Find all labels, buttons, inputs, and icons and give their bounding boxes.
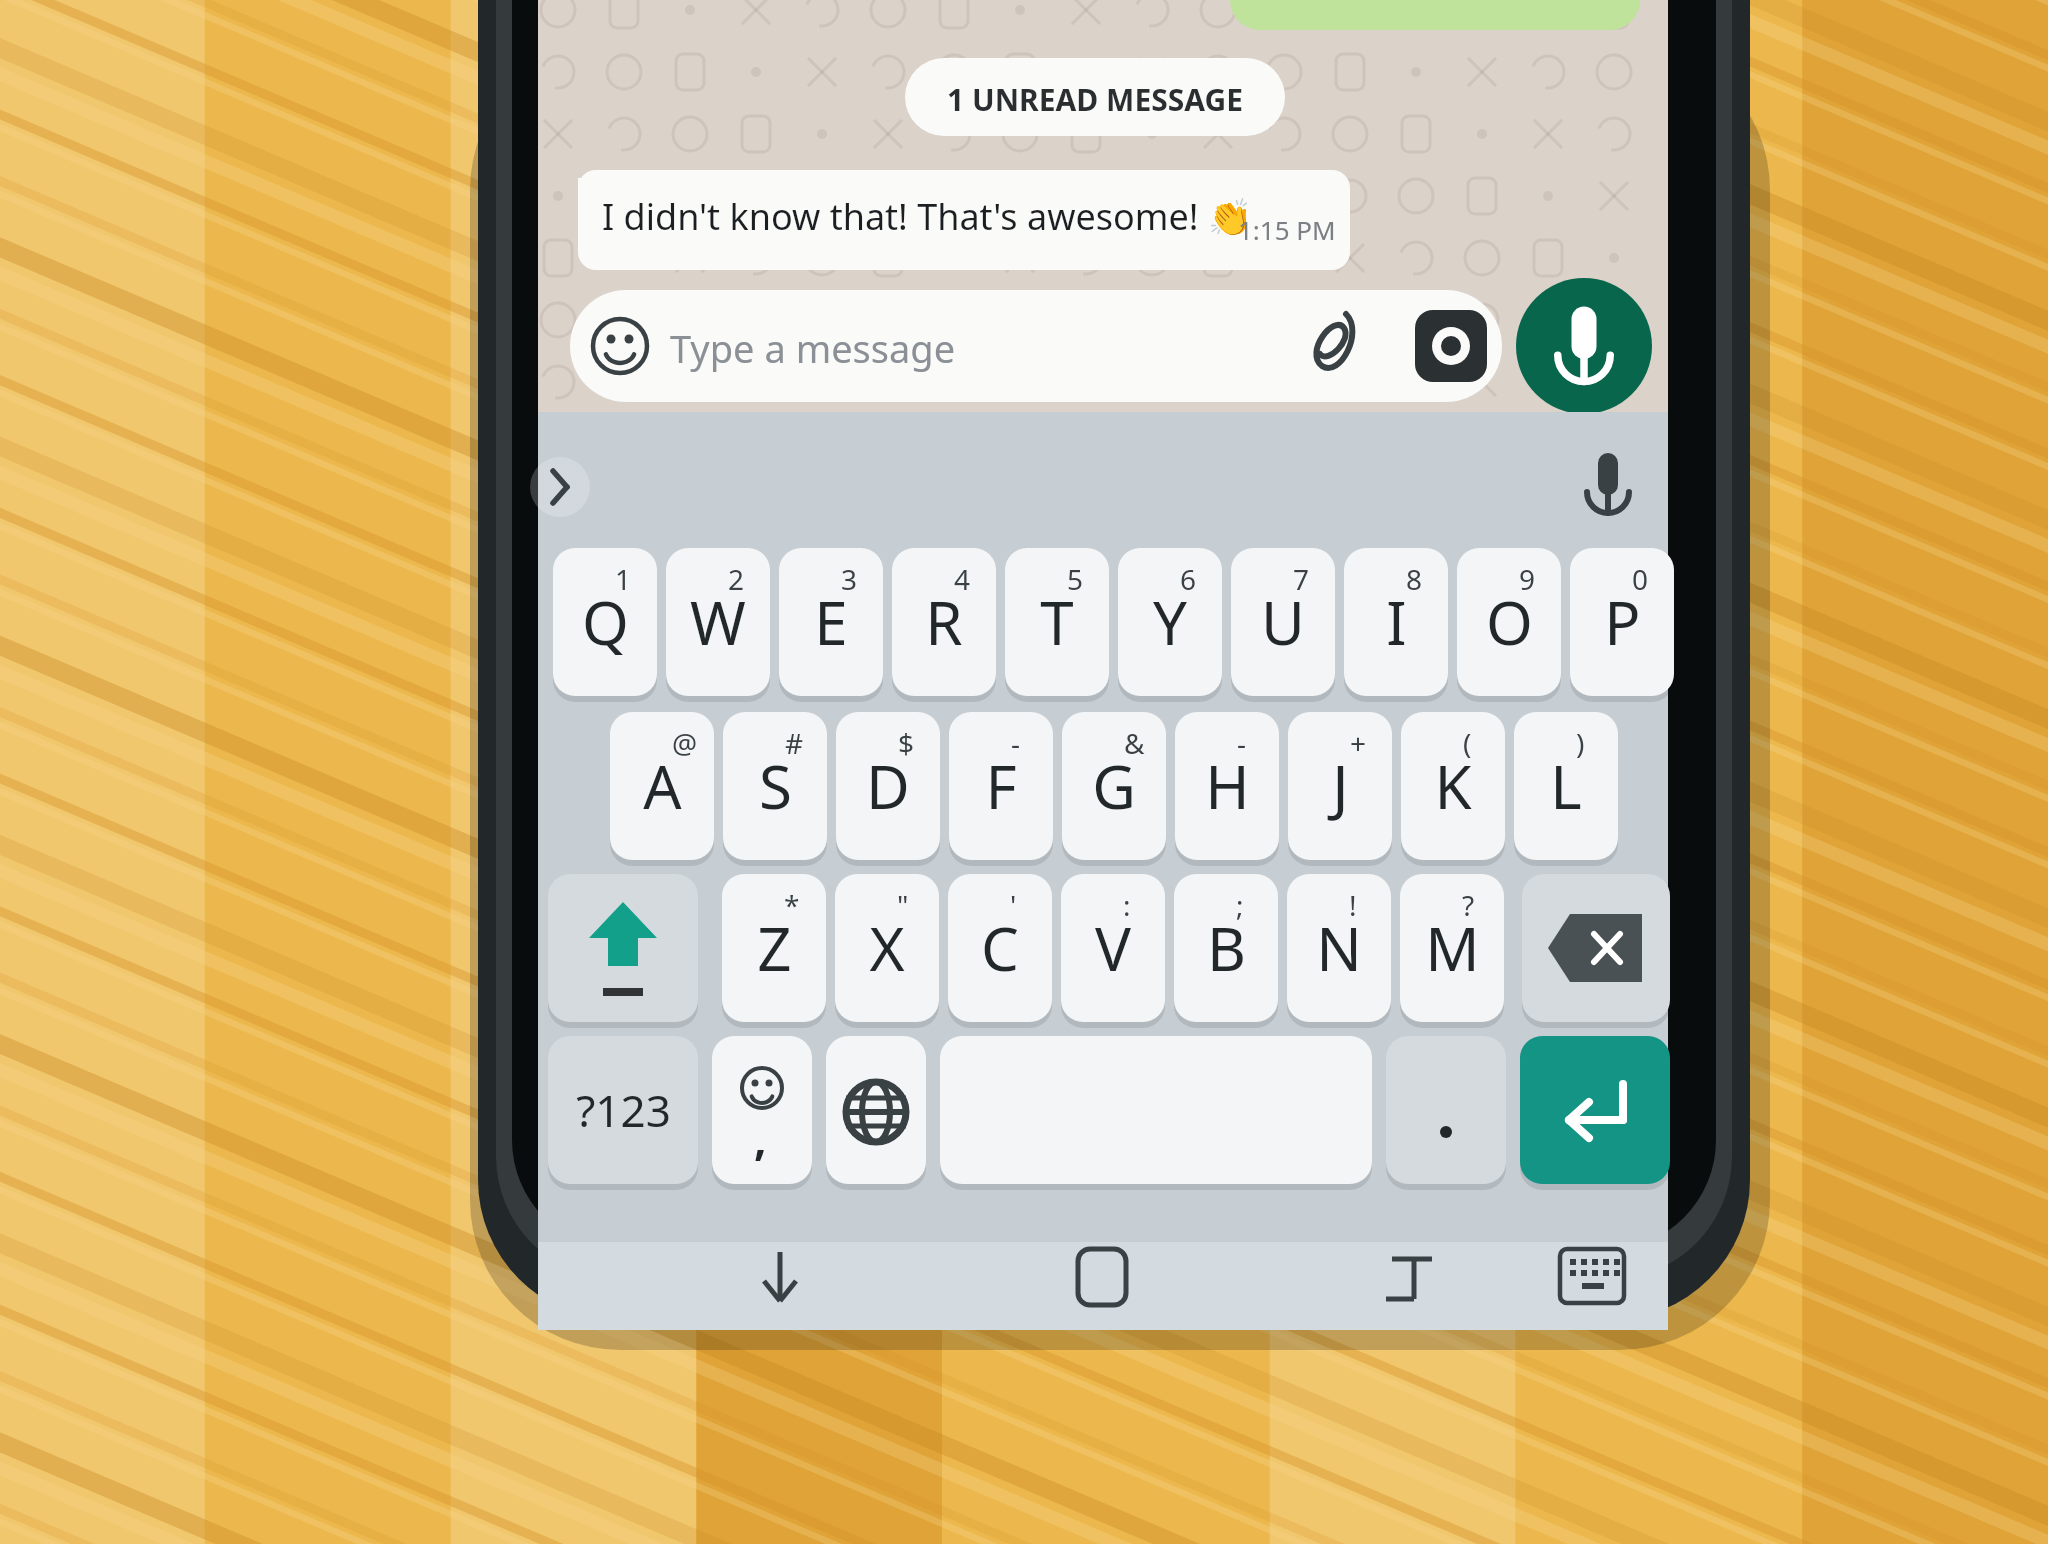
button[interactable]: Home [1062, 1242, 1142, 1328]
staticText: 3 [841, 560, 858, 598]
button[interactable]: T [1005, 566, 1109, 678]
button[interactable]: Space [940, 1036, 1372, 1184]
staticText: : [1123, 886, 1131, 924]
button[interactable]: K [1401, 730, 1505, 842]
button[interactable]: S [723, 730, 827, 842]
button[interactable]: Voice input [1578, 453, 1638, 513]
staticText: L [1550, 745, 1582, 827]
staticText: M [1425, 907, 1480, 989]
staticText: Q [582, 581, 629, 663]
staticText: A [643, 745, 682, 827]
button[interactable]: Emoji [712, 1036, 812, 1184]
button[interactable]: Change language [826, 1036, 926, 1184]
button[interactable]: N [1287, 892, 1391, 1004]
staticText: B [1207, 907, 1246, 989]
staticText: " [897, 886, 909, 924]
button[interactable]: Back [1380, 1242, 1460, 1328]
staticText: I [1386, 581, 1407, 663]
staticText: 2 [728, 560, 745, 598]
staticText: & [1124, 724, 1145, 762]
button[interactable]: Type a message [570, 290, 1502, 402]
button[interactable]: H [1175, 730, 1279, 842]
staticText: ; [1236, 886, 1244, 924]
button[interactable]: F [949, 730, 1053, 842]
button[interactable]: Period [1386, 1036, 1506, 1184]
staticText: O [1486, 581, 1533, 663]
staticText: R [925, 581, 963, 663]
staticText: 1 UNREAD MESSAGE [947, 79, 1243, 120]
staticText: - [1237, 724, 1247, 762]
staticText: F [985, 745, 1017, 827]
staticText: 5 [1067, 560, 1084, 598]
staticText: T [1040, 581, 1074, 663]
staticText: + [1350, 724, 1367, 762]
staticText: $ [898, 724, 915, 762]
button[interactable]: R [892, 566, 996, 678]
staticText: Y [1153, 581, 1187, 663]
staticText: H [1205, 745, 1250, 827]
button[interactable]: O [1457, 566, 1561, 678]
button[interactable]: Enter [1520, 1036, 1670, 1184]
button[interactable]: Y [1118, 566, 1222, 678]
staticText: P [1604, 581, 1641, 663]
button[interactable]: Record voice message [1516, 278, 1652, 414]
staticText: ? [1462, 886, 1475, 924]
staticText: - [1011, 724, 1021, 762]
button[interactable]: W [666, 566, 770, 678]
button[interactable]: X [835, 892, 939, 1004]
staticText: , [754, 1108, 767, 1168]
button[interactable]: Z [722, 892, 826, 1004]
staticText: # [785, 724, 804, 762]
staticText: ! [1349, 886, 1357, 924]
button[interactable]: Q [553, 566, 657, 678]
staticText: W [690, 581, 746, 663]
button[interactable]: U [1231, 566, 1335, 678]
staticText: J [1332, 745, 1349, 827]
staticText: ?123 [576, 1080, 671, 1140]
staticText: Type a message [670, 322, 956, 374]
staticText: 8 [1406, 560, 1423, 598]
button[interactable]: P [1570, 566, 1674, 678]
button[interactable]: Hide keyboard [740, 1242, 820, 1328]
staticText: N [1316, 907, 1362, 989]
staticText: 1 [615, 560, 632, 598]
staticText: 7 [1293, 560, 1310, 598]
button[interactable]: Backspace [1522, 874, 1670, 1022]
staticText: 4 [954, 560, 971, 598]
staticText: ' [1010, 886, 1017, 924]
button[interactable]: 1 UNREAD MESSAGE [905, 78, 1285, 120]
button[interactable]: E [779, 566, 883, 678]
staticText: K [1434, 745, 1472, 827]
staticText: I didn't know that! That's awesome! 👏 [602, 192, 1253, 241]
staticText: S [759, 745, 792, 827]
staticText: U [1261, 581, 1305, 663]
button[interactable]: L [1514, 730, 1618, 842]
button[interactable]: G [1062, 730, 1166, 842]
staticText: 6 [1180, 560, 1197, 598]
staticText: * [784, 886, 800, 924]
staticText: X [869, 907, 905, 989]
staticText: @ [672, 724, 698, 762]
staticText: 0 [1632, 560, 1649, 598]
button[interactable]: Expand toolbar [530, 457, 590, 517]
button[interactable]: J [1288, 730, 1392, 842]
button[interactable]: V [1061, 892, 1165, 1004]
staticText: V [1095, 907, 1131, 989]
button[interactable]: Shift [548, 874, 698, 1022]
staticText: 9 [1519, 560, 1536, 598]
button[interactable]: D [836, 730, 940, 842]
staticText: G [1092, 745, 1136, 827]
button[interactable]: C [948, 892, 1052, 1004]
staticText: Z [757, 907, 792, 989]
button[interactable]: M [1400, 892, 1504, 1004]
button[interactable]: A [610, 730, 714, 842]
staticText: ( [1463, 724, 1472, 762]
button[interactable]: Switch keyboard [1556, 1242, 1636, 1328]
staticText: D [866, 745, 910, 827]
staticText: 1:15 PM [1238, 212, 1336, 247]
button[interactable]: I [1344, 566, 1448, 678]
staticText: ) [1576, 724, 1585, 762]
button[interactable]: ?123 [548, 1036, 698, 1184]
staticText: E [814, 581, 848, 663]
button[interactable]: B [1174, 892, 1278, 1004]
